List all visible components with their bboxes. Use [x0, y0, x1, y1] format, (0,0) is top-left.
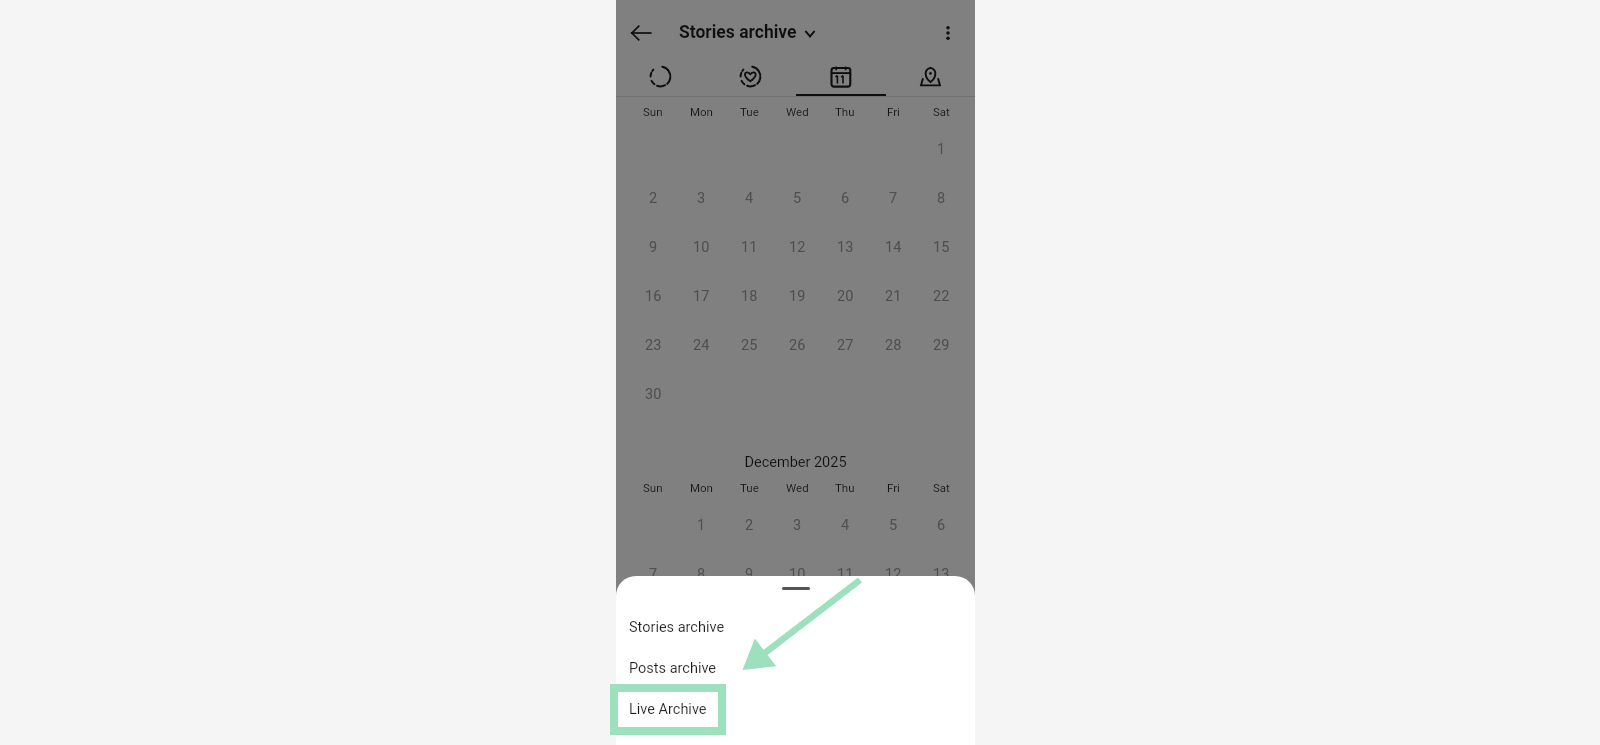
staticText: 24: [693, 337, 710, 354]
staticText: Wed: [786, 105, 809, 118]
button[interactable]: Posts archive: [616, 648, 975, 689]
staticText: 28: [645, 713, 662, 730]
button[interactable]: More options: [928, 13, 968, 53]
staticText: 21: [645, 664, 662, 681]
staticText: 21: [885, 288, 902, 305]
staticText: 14: [885, 239, 902, 256]
staticText: 8: [697, 566, 706, 583]
staticText: 28: [885, 337, 902, 354]
staticText: 6: [937, 517, 946, 534]
staticText: 5: [889, 517, 898, 534]
staticText: Fri: [887, 105, 900, 118]
staticText: 4: [841, 517, 850, 534]
staticText: 10: [693, 239, 710, 256]
staticText: 7: [649, 566, 658, 583]
staticText: 20: [837, 288, 854, 305]
staticText: 19: [789, 288, 806, 305]
staticText: Sun: [643, 105, 663, 118]
staticText: Sun: [643, 481, 663, 494]
staticText: 4: [745, 190, 754, 207]
staticText: Live Archive: [629, 701, 707, 718]
staticText: 29: [693, 713, 710, 730]
staticText: 14: [645, 615, 662, 632]
button[interactable]: Highlights: [705, 64, 795, 97]
staticText: Mon: [690, 481, 713, 494]
staticText: 17: [789, 615, 806, 632]
staticText: 8: [937, 190, 946, 207]
staticText: 25: [741, 337, 758, 354]
staticText: 12: [885, 566, 902, 583]
staticText: 16: [645, 288, 662, 305]
staticText: 13: [933, 566, 950, 583]
staticText: Sat: [933, 105, 950, 118]
button[interactable]: Calendar: [795, 64, 885, 97]
button[interactable]: Live Archive: [616, 689, 975, 730]
staticText: 9: [745, 566, 754, 583]
staticText: 1: [937, 141, 946, 158]
staticText: 7: [889, 190, 898, 207]
staticText: 11: [837, 566, 854, 583]
staticText: 17: [693, 288, 710, 305]
staticText: 26: [789, 337, 806, 354]
staticText: Tue: [740, 105, 759, 118]
staticText: 2: [649, 190, 658, 207]
staticText: 23: [645, 337, 662, 354]
staticText: 6: [841, 190, 850, 207]
staticText: 22: [933, 288, 950, 305]
staticText: 27: [837, 337, 854, 354]
staticText: 1: [697, 517, 706, 534]
staticText: 12: [789, 239, 806, 256]
staticText: Thu: [835, 105, 855, 118]
staticText: Fri: [887, 481, 900, 494]
staticText: Stories archive: [679, 22, 797, 43]
staticText: 5: [793, 190, 802, 207]
staticText: 22: [693, 664, 710, 681]
staticText: Tue: [740, 481, 759, 494]
staticText: 10: [789, 566, 806, 583]
staticText: 3: [793, 517, 802, 534]
button[interactable]: Map: [885, 64, 975, 97]
staticText: 3: [697, 190, 706, 207]
staticText: 18: [741, 288, 758, 305]
staticText: 13: [837, 239, 854, 256]
staticText: 29: [933, 337, 950, 354]
staticText: Stories archive: [629, 619, 725, 636]
staticText: December 2025: [616, 454, 975, 471]
button[interactable]: Back: [619, 10, 663, 54]
staticText: 11: [741, 239, 758, 256]
staticText: Posts archive: [629, 660, 717, 677]
staticText: Sat: [933, 481, 950, 494]
staticText: 23: [741, 664, 758, 681]
staticText: Mon: [690, 105, 713, 118]
staticText: 15: [693, 615, 710, 632]
button[interactable]: Stories archive: [616, 607, 975, 648]
staticText: Wed: [786, 481, 809, 494]
staticText: 2: [745, 517, 754, 534]
staticText: 9: [649, 239, 658, 256]
button[interactable]: Stories archive: [679, 22, 815, 43]
staticText: Thu: [835, 481, 855, 494]
staticText: 30: [645, 386, 662, 403]
button[interactable]: Stories: [616, 64, 705, 97]
staticText: 15: [933, 239, 950, 256]
